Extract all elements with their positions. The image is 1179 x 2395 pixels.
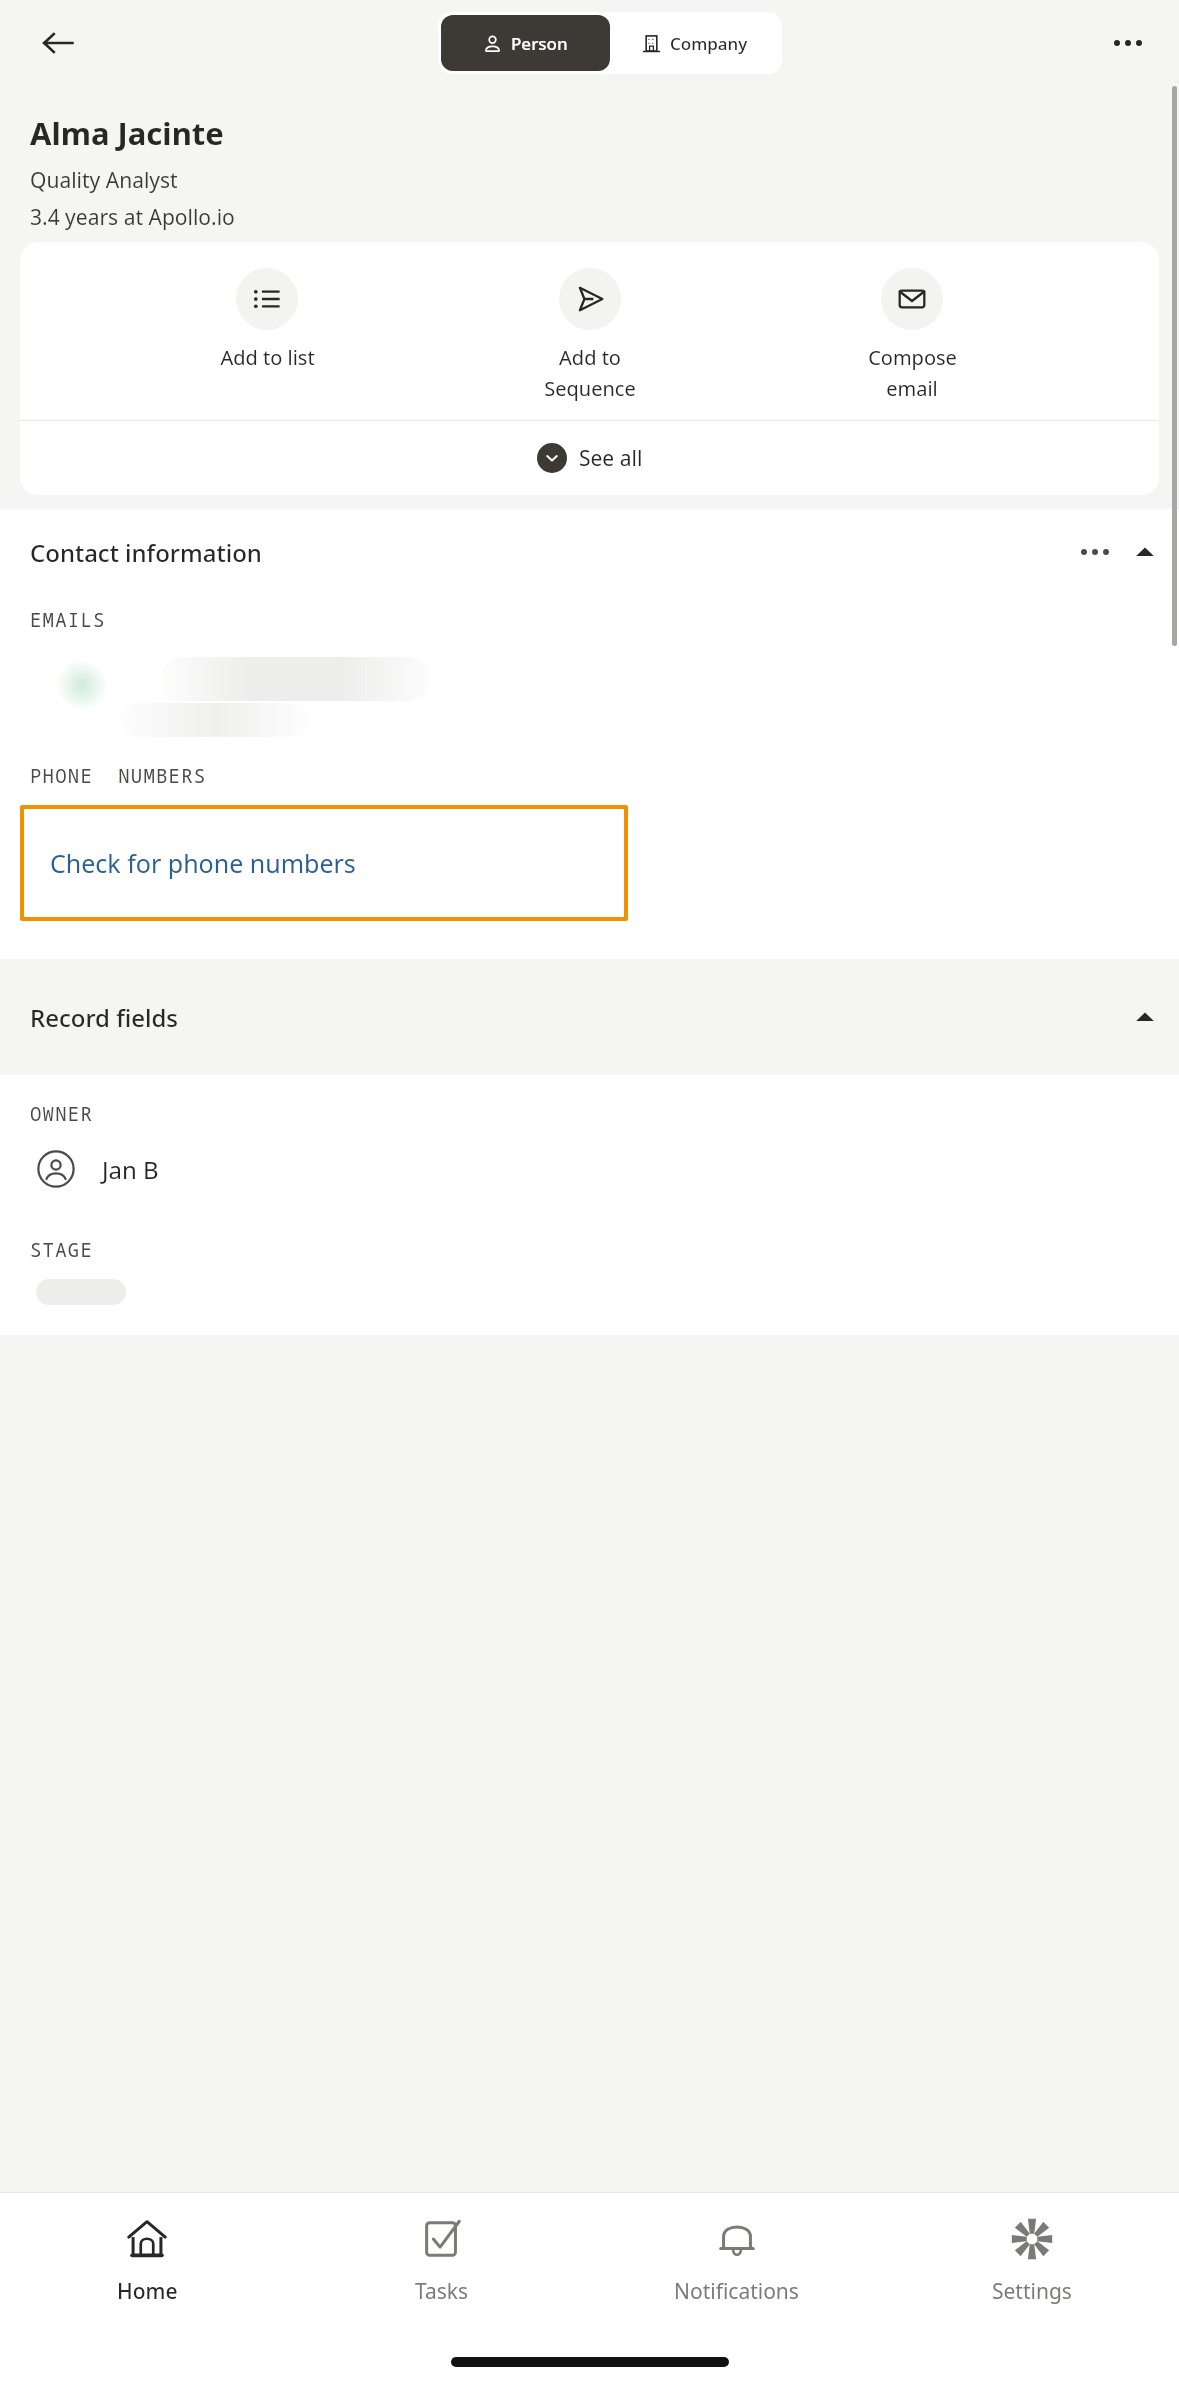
staticText: STAGE — [30, 1237, 94, 1263]
button[interactable]: Settings — [884, 2193, 1179, 2343]
staticText: Home — [117, 2277, 178, 2306]
staticText: Compose — [868, 344, 957, 371]
staticText: Add to list — [220, 344, 315, 371]
button[interactable]: More options — [1101, 16, 1155, 70]
button[interactable]: Tasks — [294, 2193, 589, 2343]
button[interactable]: Compose — [837, 264, 987, 406]
button[interactable]: Contact information — [0, 509, 1179, 595]
button[interactable]: Jan B — [0, 1149, 1179, 1195]
staticText: Sequence — [544, 375, 636, 402]
staticText: Alma Jacinte — [30, 112, 224, 154]
staticText: Add to — [559, 344, 621, 371]
staticText: Contact information — [30, 536, 262, 569]
staticText: Tasks — [415, 2277, 469, 2306]
staticText: OWNER — [30, 1101, 94, 1127]
button[interactable]: Record fields — [0, 959, 1179, 1075]
staticText: Record fields — [30, 1001, 179, 1034]
staticText: Quality Analyst — [30, 166, 178, 195]
staticText: Notifications — [674, 2277, 799, 2306]
staticText: Settings — [992, 2277, 1072, 2306]
staticText: See all — [579, 444, 643, 473]
button[interactable]: Back — [32, 17, 84, 69]
button[interactable]: Company — [610, 15, 779, 71]
staticText: Person — [511, 32, 568, 55]
staticText: EMAILS — [30, 607, 106, 633]
staticText: Company — [670, 32, 748, 55]
staticText: Check for phone numbers — [50, 846, 356, 880]
button[interactable]: Add to — [515, 264, 665, 406]
staticText: PHONE NUMBERS — [30, 763, 207, 789]
button[interactable]: See all — [20, 421, 1159, 495]
button[interactable]: Add to list — [192, 264, 342, 375]
button[interactable]: Home — [0, 2193, 294, 2343]
staticText: email — [886, 375, 938, 402]
button[interactable]: Notifications — [589, 2193, 884, 2343]
button[interactable]: Check for phone numbers — [20, 805, 628, 921]
staticText: 3.4 years at Apollo.io — [30, 203, 235, 232]
button[interactable]: Person — [441, 15, 610, 71]
staticText: Jan B — [102, 1153, 159, 1186]
